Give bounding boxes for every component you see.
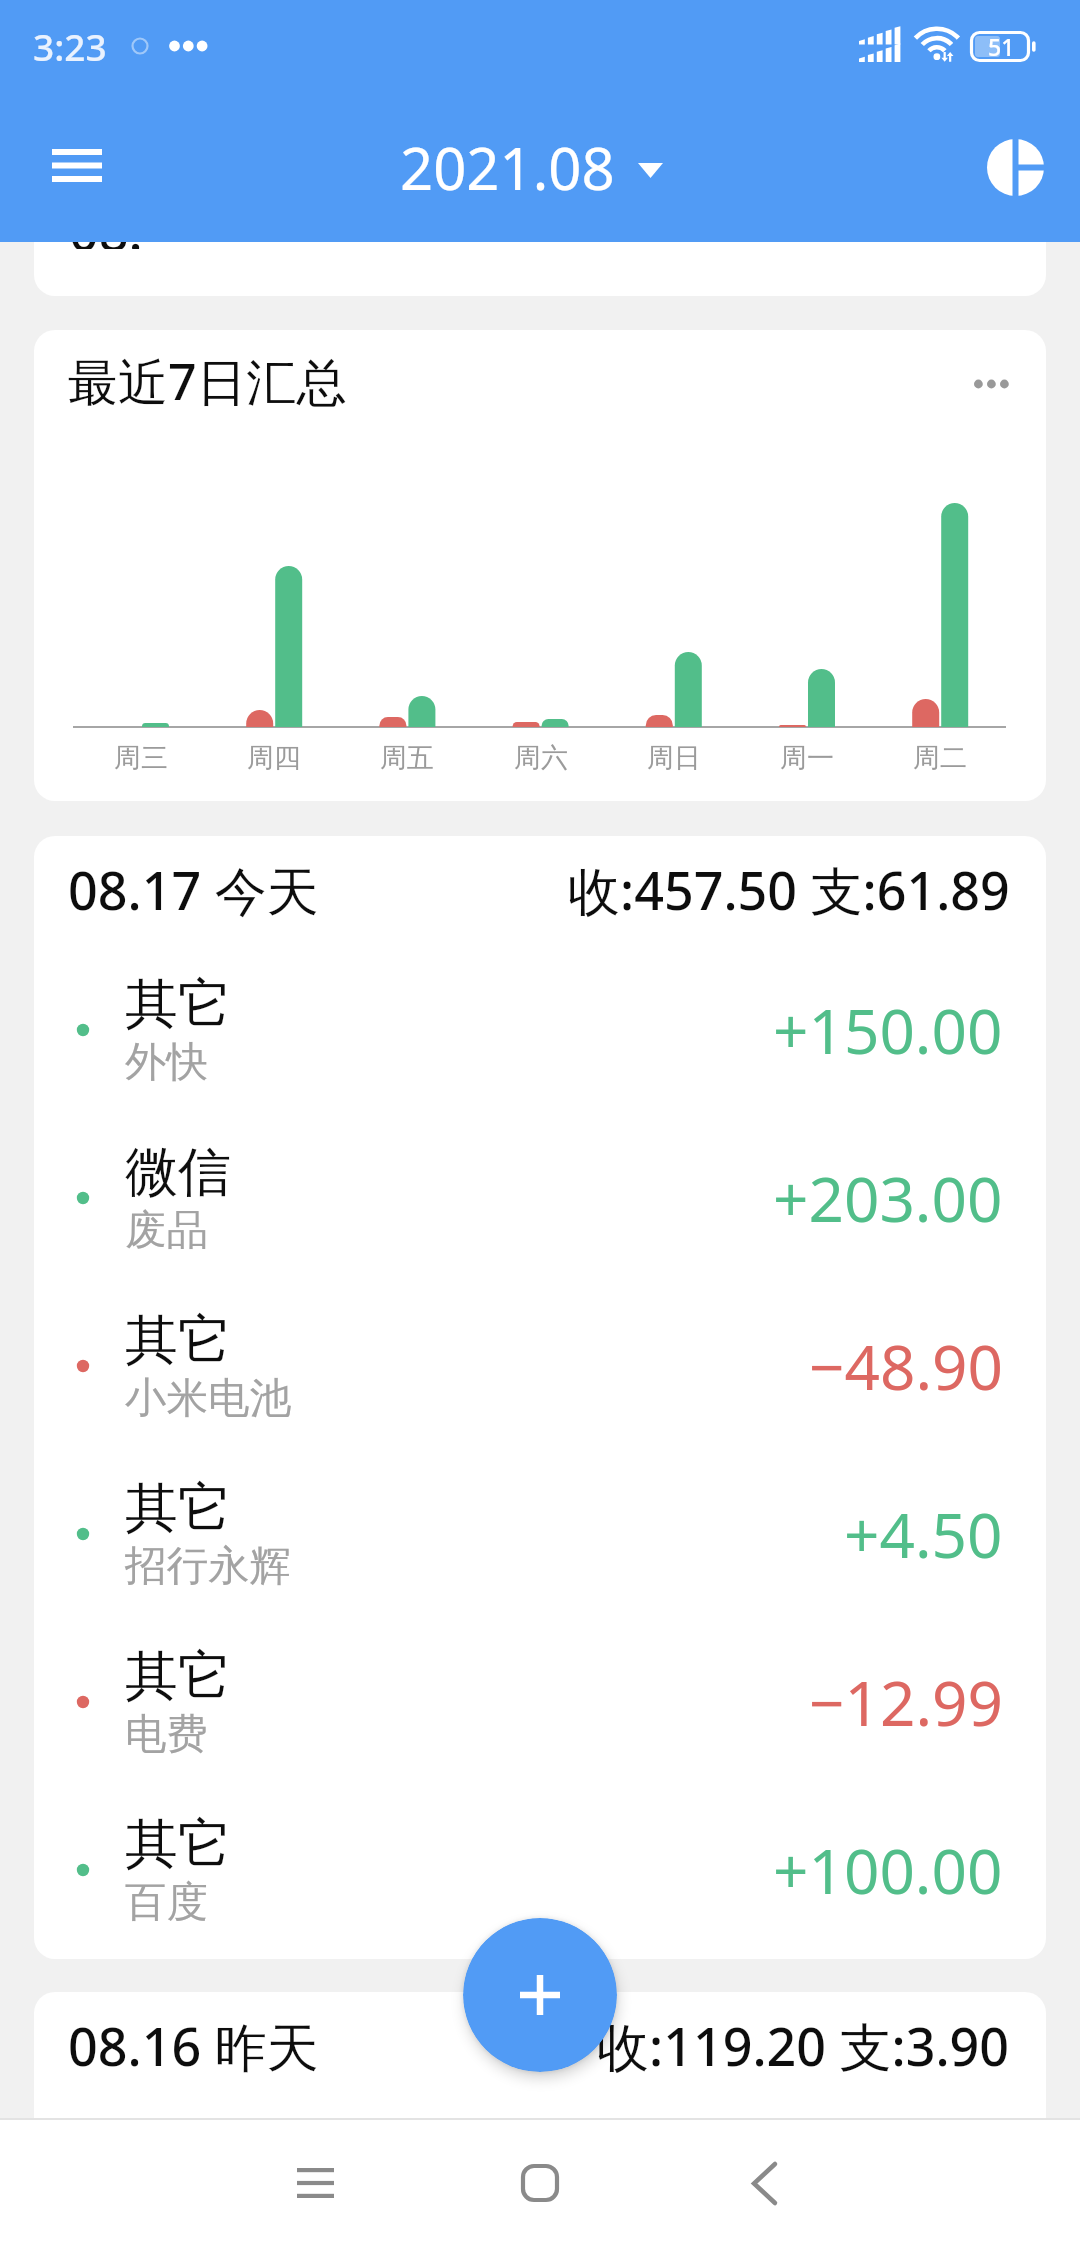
staticText: 外快 bbox=[125, 1036, 208, 1088]
staticText: 周四 bbox=[247, 741, 301, 775]
staticText: 其它 bbox=[125, 1307, 231, 1374]
staticText: 微信 bbox=[125, 1139, 231, 1206]
staticText: 08.17 今天 bbox=[68, 854, 319, 925]
button[interactable]: 微信 bbox=[34, 1114, 1046, 1282]
button[interactable]: Menu bbox=[25, 115, 129, 219]
staticText: 2021.08 bbox=[400, 128, 615, 207]
staticText: 08. bbox=[69, 242, 143, 249]
staticText: 小米电池 bbox=[125, 1372, 291, 1424]
staticText: 百度 bbox=[125, 1876, 208, 1928]
staticText: −48.90 bbox=[809, 1324, 1003, 1408]
staticText: 电费 bbox=[125, 1708, 208, 1760]
staticText: 其它 bbox=[125, 971, 231, 1038]
button[interactable]: 其它 bbox=[34, 1282, 1046, 1450]
staticText: −12.99 bbox=[809, 1660, 1003, 1744]
button[interactable]: 其它 bbox=[34, 1618, 1046, 1786]
button[interactable]: More options bbox=[956, 346, 1026, 416]
staticText: +150.00 bbox=[773, 988, 1003, 1072]
staticText: 其它 bbox=[125, 1643, 231, 1710]
staticText: 废品 bbox=[125, 1204, 208, 1256]
staticText: 周一 bbox=[780, 741, 834, 775]
button[interactable]: Home bbox=[490, 2133, 590, 2233]
staticText: 周五 bbox=[380, 741, 434, 775]
staticText: +203.00 bbox=[773, 1156, 1003, 1240]
staticText: 收:119.20 支:3.90 bbox=[597, 2010, 1010, 2081]
button[interactable]: Back bbox=[714, 2133, 814, 2233]
button[interactable]: 其它 bbox=[34, 1786, 1046, 1954]
staticText: +100.00 bbox=[773, 1828, 1003, 1912]
button[interactable]: Recent apps bbox=[265, 2133, 365, 2233]
button[interactable]: 08. bbox=[34, 242, 1046, 296]
staticText: 3:23 bbox=[33, 21, 107, 71]
button[interactable]: Add record bbox=[463, 1918, 617, 2072]
staticText: 周日 bbox=[647, 741, 701, 775]
staticText: 其它 bbox=[125, 1811, 231, 1878]
button[interactable]: 其它 bbox=[34, 1450, 1046, 1618]
staticText: 最近7日汇总 bbox=[68, 347, 347, 415]
button[interactable]: 08.17 今天 bbox=[34, 836, 1046, 946]
staticText: 收:457.50 支:61.89 bbox=[568, 854, 1010, 925]
staticText: 周三 bbox=[114, 741, 168, 775]
staticText: 51 bbox=[988, 31, 1015, 62]
button[interactable]: 其它 bbox=[34, 946, 1046, 1114]
button[interactable]: 08.16 昨天 bbox=[34, 1992, 1046, 2118]
staticText: +4.50 bbox=[844, 1492, 1003, 1576]
staticText: 招行永辉 bbox=[125, 1540, 291, 1592]
staticText: 其它 bbox=[125, 1475, 231, 1542]
staticText: 周六 bbox=[514, 741, 568, 775]
button[interactable]: Statistics bbox=[965, 117, 1065, 217]
staticText: 08.16 昨天 bbox=[68, 2010, 319, 2081]
button[interactable]: 2021.08 bbox=[382, 116, 681, 219]
staticText: 周二 bbox=[913, 741, 967, 775]
